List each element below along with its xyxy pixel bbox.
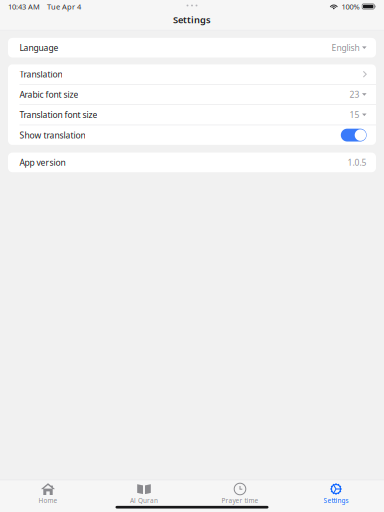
button[interactable]: Home — [0, 480, 96, 504]
button[interactable]: Prayer time — [192, 480, 288, 504]
staticText: Language — [19, 42, 58, 53]
staticText: 1.0.5 — [348, 157, 367, 168]
staticText: App version — [19, 157, 65, 168]
staticText: 23 — [349, 89, 359, 100]
staticText: Arabic font size — [19, 89, 78, 100]
button[interactable]: Translation font size — [8, 105, 376, 125]
staticText: English — [331, 42, 359, 53]
staticText: Al Quran — [130, 496, 158, 505]
staticText: Show translation — [19, 129, 85, 141]
staticText: Settings — [323, 496, 348, 505]
staticText: Prayer time — [221, 496, 258, 505]
staticText: Home — [38, 496, 57, 505]
button[interactable]: Multitasking controls — [172, 4, 212, 7]
button[interactable]: Arabic font size — [8, 85, 376, 104]
button[interactable]: Show translation — [8, 125, 376, 145]
button[interactable]: App version — [8, 153, 376, 172]
button[interactable]: Settings — [288, 480, 384, 504]
staticText: 10:43 AM — [8, 1, 40, 12]
staticText: 15 — [349, 109, 359, 121]
staticText: Translation font size — [19, 109, 97, 121]
button[interactable]: Translation — [8, 64, 376, 84]
staticText: Translation — [19, 68, 62, 80]
staticText: 100% — [341, 1, 359, 12]
staticText: Tue Apr 4 — [47, 1, 81, 12]
staticText: Settings — [173, 13, 211, 26]
button[interactable]: Al Quran — [96, 480, 192, 504]
button[interactable]: Language — [8, 38, 376, 57]
